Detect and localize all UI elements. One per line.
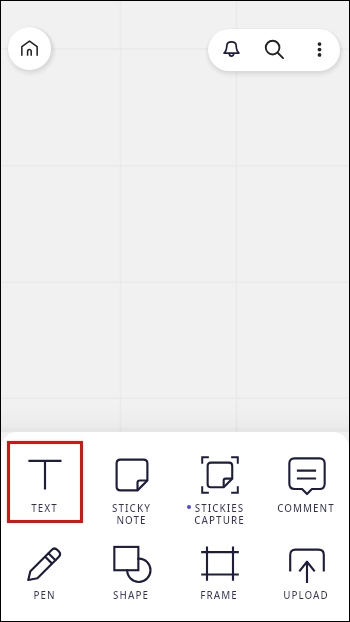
button[interactable]: More options <box>297 29 340 71</box>
staticText: STICKY NOTE <box>112 502 151 527</box>
button[interactable]: PEN <box>7 529 83 611</box>
staticText: TEXT <box>31 502 58 515</box>
button[interactable]: Notifications <box>208 29 253 71</box>
staticText: UPLOAD <box>283 589 329 602</box>
staticText: SHAPE <box>113 589 149 602</box>
button[interactable]: STICKY NOTE <box>94 441 170 523</box>
staticText: FRAME <box>200 589 238 602</box>
button[interactable]: UPLOAD <box>269 529 345 611</box>
staticText: PEN <box>33 589 56 602</box>
button[interactable]: COMMENT <box>269 441 345 523</box>
button[interactable]: TEXT <box>7 441 83 523</box>
button[interactable]: Search <box>253 29 297 71</box>
button[interactable]: FRAME <box>182 529 258 611</box>
button[interactable]: Home <box>8 27 51 70</box>
button[interactable]: SHAPE <box>94 529 170 611</box>
staticText: COMMENT <box>277 502 335 515</box>
staticText: STICKIES CAPTURE <box>194 502 245 527</box>
button[interactable]: STICKIES CAPTURE <box>182 441 258 523</box>
